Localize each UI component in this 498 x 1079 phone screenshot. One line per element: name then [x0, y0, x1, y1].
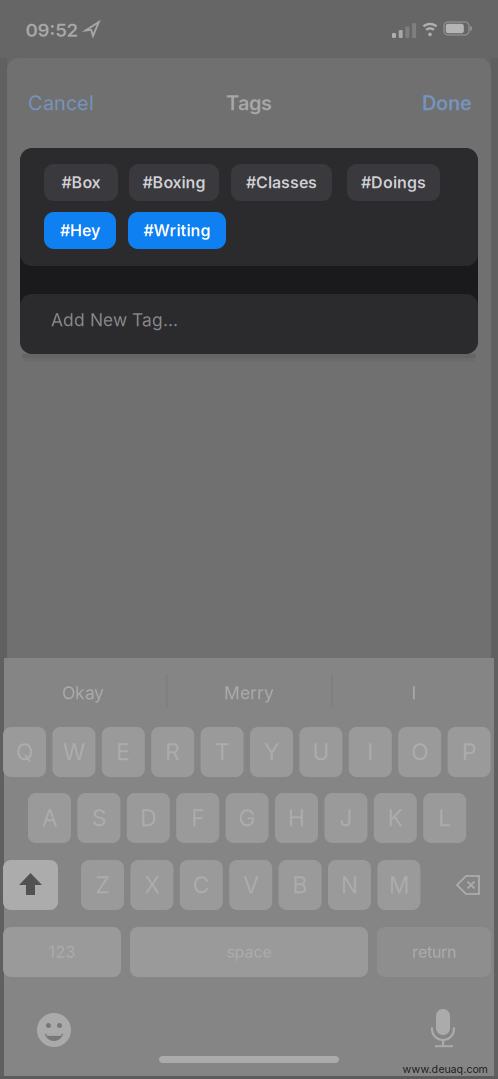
staticText: F — [191, 805, 204, 831]
staticText: I — [367, 739, 373, 765]
staticText: A — [42, 805, 57, 831]
button[interactable]: Y — [250, 727, 293, 777]
staticText: C — [193, 872, 210, 898]
staticText: I — [411, 683, 416, 703]
staticText: K — [388, 805, 403, 831]
button[interactable]: #Classes — [231, 164, 332, 201]
button[interactable]: L — [423, 793, 466, 843]
staticText: U — [312, 739, 329, 765]
button[interactable]: F — [176, 793, 219, 843]
staticText: L — [438, 805, 451, 831]
staticText: E — [116, 739, 130, 765]
staticText: T — [215, 739, 229, 765]
button[interactable]: #Doings — [347, 164, 440, 201]
staticText: D — [140, 805, 156, 831]
button[interactable]: 123 — [3, 927, 121, 977]
staticText: P — [462, 739, 476, 765]
staticText: #Writing — [143, 221, 210, 240]
button[interactable]: Shift — [3, 860, 58, 910]
staticText: G — [239, 805, 256, 831]
button[interactable]: S — [77, 793, 120, 843]
button[interactable]: I — [411, 683, 416, 703]
staticText: R — [165, 739, 180, 765]
staticText: Y — [264, 739, 279, 765]
button[interactable]: #Boxing — [129, 164, 219, 201]
staticText: www.deuaq.com — [402, 1063, 487, 1075]
button[interactable]: T — [201, 727, 244, 777]
staticText: W — [63, 739, 85, 765]
button[interactable]: Merry — [224, 683, 274, 703]
button[interactable]: #Hey — [44, 212, 116, 249]
staticText: J — [339, 805, 352, 831]
staticText: 123 — [48, 943, 75, 961]
staticText: S — [92, 805, 106, 831]
button[interactable]: Z — [81, 860, 124, 910]
button[interactable]: C — [180, 860, 223, 910]
staticText: B — [293, 872, 308, 898]
button[interactable]: Cancel — [28, 91, 94, 115]
staticText: 09:52 — [25, 19, 78, 41]
button[interactable]: G — [226, 793, 269, 843]
staticText: Q — [16, 739, 33, 765]
staticText: space — [226, 943, 271, 961]
button[interactable]: I — [349, 727, 392, 777]
button[interactable]: J — [324, 793, 367, 843]
button[interactable]: Okay — [62, 683, 104, 703]
button[interactable]: D — [127, 793, 170, 843]
button[interactable]: E — [102, 727, 145, 777]
staticText: #Box — [61, 173, 100, 192]
staticText: N — [341, 872, 358, 898]
staticText: Done — [422, 91, 472, 115]
button[interactable]: V — [229, 860, 272, 910]
staticText: Z — [95, 872, 109, 898]
button[interactable]: #Box — [44, 164, 118, 201]
staticText: Merry — [224, 683, 274, 703]
button[interactable]: Done — [422, 91, 472, 115]
button[interactable]: A — [28, 793, 71, 843]
button[interactable]: O — [398, 727, 441, 777]
staticText: X — [144, 872, 159, 898]
staticText: V — [243, 872, 258, 898]
button[interactable]: X — [130, 860, 173, 910]
staticText: #Doings — [361, 173, 426, 192]
button[interactable]: K — [374, 793, 417, 843]
button[interactable]: Add New Tag… — [51, 290, 461, 350]
button[interactable]: N — [328, 860, 371, 910]
staticText: Tags — [226, 91, 272, 115]
staticText: #Classes — [246, 173, 317, 192]
staticText: Cancel — [28, 91, 94, 115]
button[interactable]: P — [448, 727, 491, 777]
staticText: return — [412, 943, 456, 961]
staticText: O — [411, 739, 428, 765]
button[interactable]: W — [52, 727, 95, 777]
button[interactable]: return — [377, 927, 491, 977]
staticText: #Hey — [60, 221, 100, 240]
staticText: Add New Tag… — [51, 310, 178, 330]
staticText: #Boxing — [142, 173, 205, 192]
staticText: H — [288, 805, 305, 831]
button[interactable]: H — [275, 793, 318, 843]
button[interactable]: Delete — [436, 860, 491, 910]
button[interactable]: Emoji — [37, 1013, 71, 1047]
staticText: M — [389, 872, 409, 898]
button[interactable]: Dictate — [428, 1006, 461, 1048]
button[interactable]: Q — [3, 727, 46, 777]
staticText: Okay — [62, 683, 104, 703]
button[interactable]: R — [151, 727, 194, 777]
button[interactable]: B — [279, 860, 322, 910]
button[interactable]: M — [377, 860, 420, 910]
button[interactable]: #Writing — [128, 212, 226, 249]
button[interactable]: U — [299, 727, 342, 777]
